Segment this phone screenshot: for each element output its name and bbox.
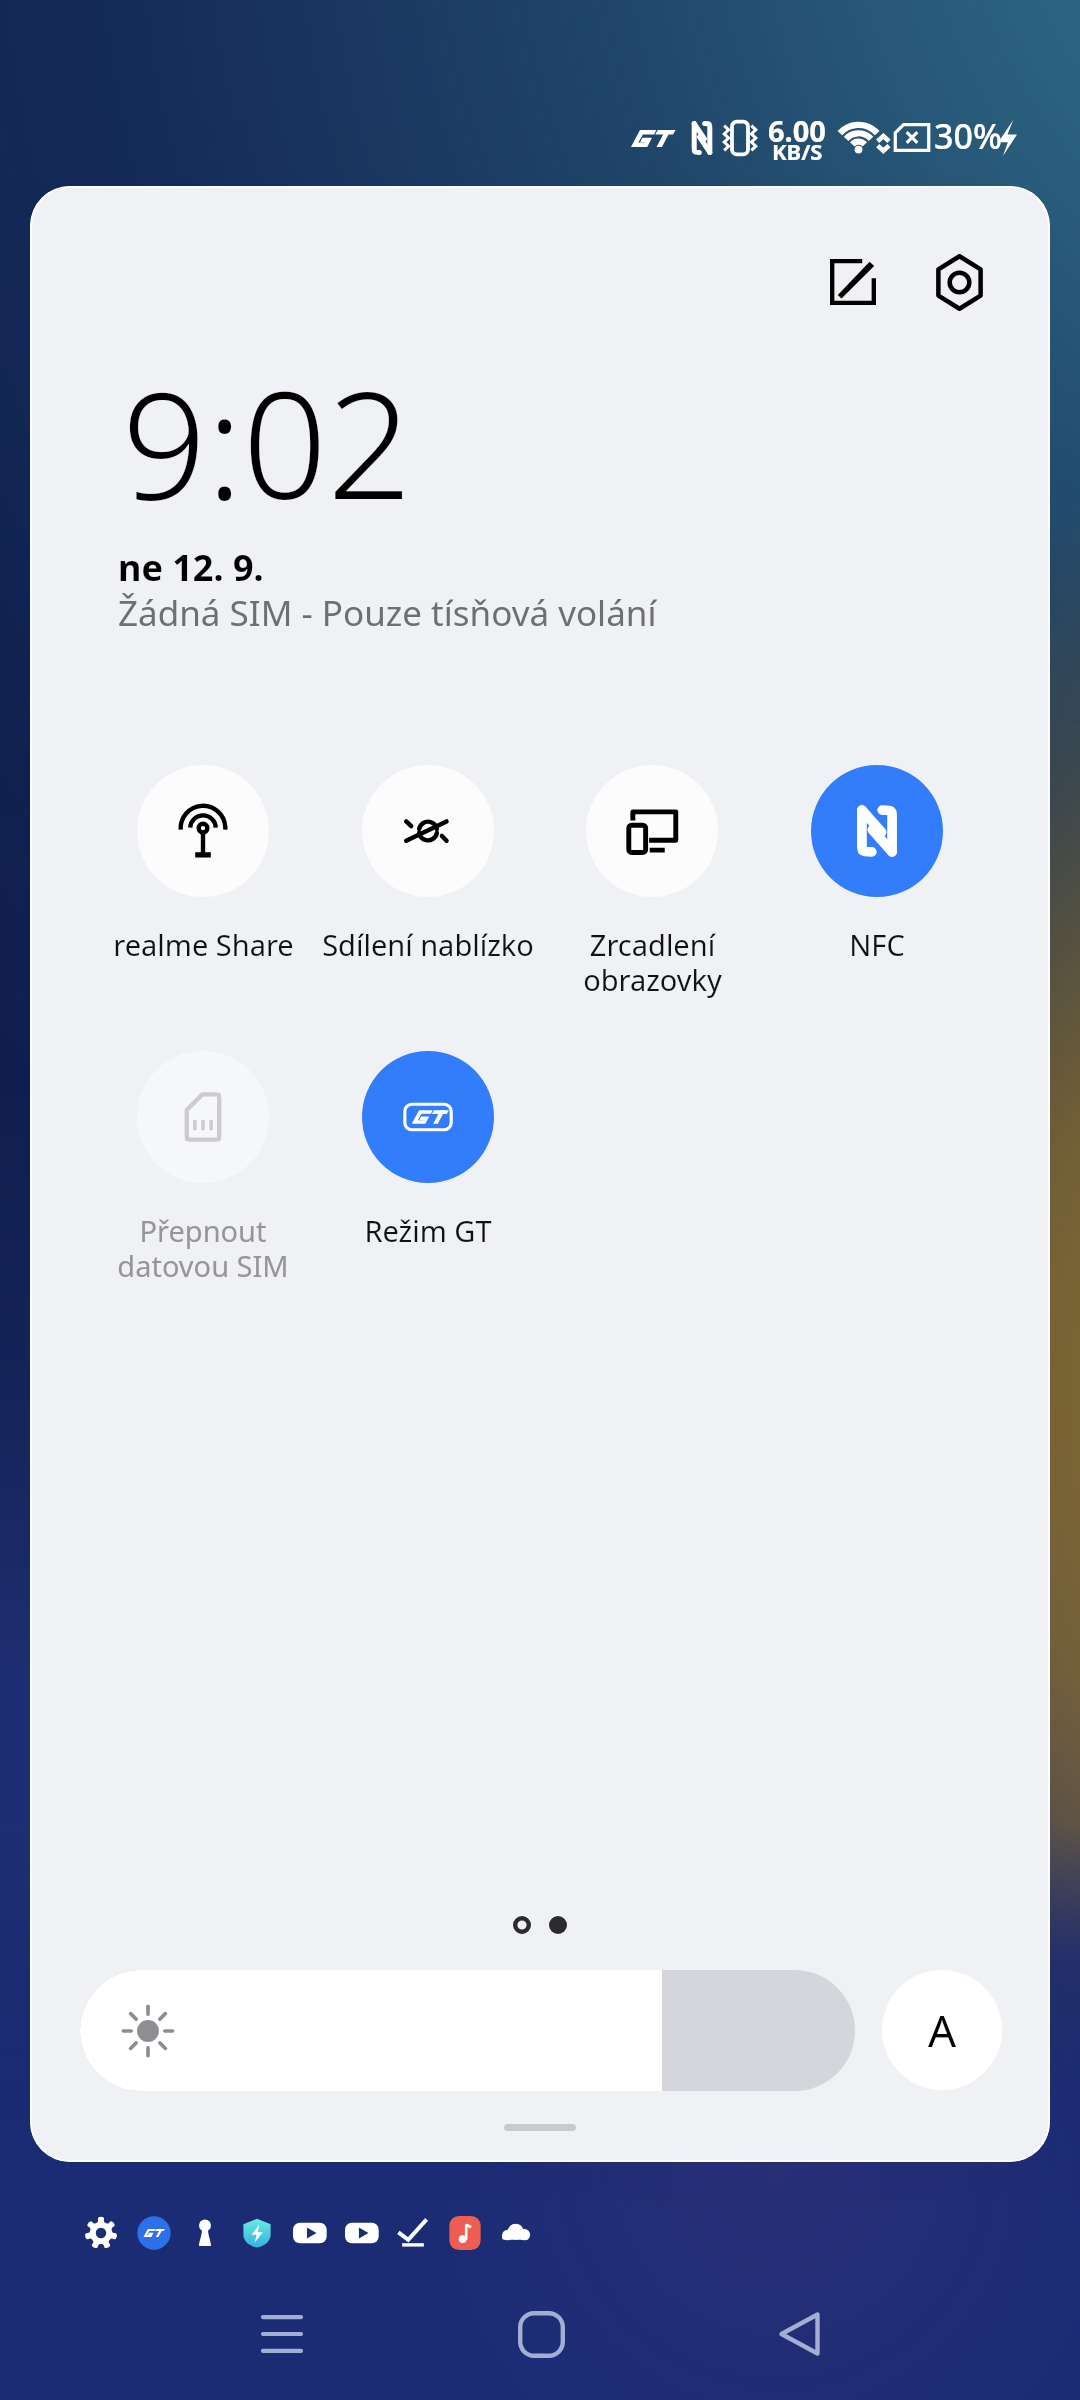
staticText: Režim GT [364, 1211, 492, 1250]
staticText: realme Share [113, 925, 294, 964]
staticText: NFC [849, 925, 905, 964]
staticText: Žádná SIM - Pouze tísňová volání [118, 589, 657, 637]
button[interactable]: realme Share [53, 765, 353, 964]
button[interactable]: NFC [727, 765, 1027, 964]
button[interactable]: Recent apps [212, 2274, 352, 2394]
button[interactable]: Settings [909, 232, 1009, 332]
button[interactable]: Zrcadlení obrazovky [502, 765, 802, 1000]
button[interactable]: Přepnout datovou SIM [53, 1051, 353, 1286]
staticText: ne 12. 9. [118, 543, 264, 592]
staticText: 30% [934, 113, 1002, 159]
button[interactable]: Sdílení nablízko [278, 765, 578, 964]
staticText: 6.00 [768, 111, 826, 150]
staticText: Přepnout datovou SIM [117, 1211, 289, 1286]
staticText: 9:02 [122, 341, 412, 543]
button[interactable]: Režim GT [278, 1051, 578, 1250]
button[interactable]: Brightness [80, 1970, 855, 2091]
button[interactable]: Home [471, 2274, 611, 2394]
staticText: A [928, 2000, 957, 2060]
button[interactable]: Back [729, 2274, 869, 2394]
button[interactable]: Auto brightness [882, 1970, 1002, 2090]
staticText: Sdílení nablízko [322, 925, 534, 964]
button[interactable]: Edit quick settings [803, 232, 903, 332]
staticText: Zrcadlení obrazovky [583, 925, 722, 1000]
staticText: KB/S [772, 136, 823, 166]
